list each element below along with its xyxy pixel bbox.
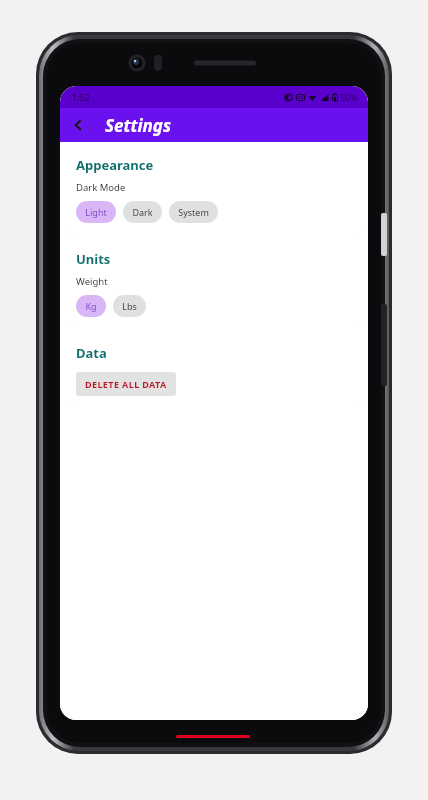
button[interactable]: Appearance (66, 146, 362, 234)
button[interactable]: Light (76, 201, 116, 223)
button[interactable]: Dark (123, 201, 162, 223)
staticText: Weight (76, 275, 108, 288)
staticText: Units (76, 250, 111, 268)
staticText: Settings (105, 114, 171, 137)
button[interactable]: Data (66, 334, 362, 407)
button[interactable]: Lbs (113, 295, 146, 317)
staticText: Data (76, 344, 107, 362)
staticText: Appearance (76, 156, 154, 174)
staticText: Kg (85, 300, 97, 312)
button[interactable]: Units (66, 240, 362, 328)
button[interactable]: DELETE ALL DATA (76, 372, 176, 396)
staticText: Dark Mode (76, 181, 126, 194)
staticText: 1:52 (72, 91, 90, 103)
staticText: DELETE ALL DATA (85, 378, 167, 390)
staticText: Light (85, 206, 107, 218)
button[interactable]: Back (65, 112, 91, 138)
button[interactable]: System (169, 201, 218, 223)
staticText: Dark (132, 206, 153, 218)
staticText: 50% (340, 91, 358, 103)
button[interactable]: Kg (76, 295, 106, 317)
staticText: Lbs (122, 300, 137, 312)
staticText: System (178, 206, 209, 218)
